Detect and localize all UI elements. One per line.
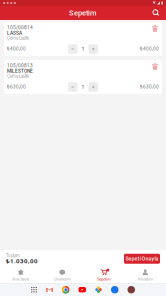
button[interactable]: Sepetim [83,265,124,284]
staticText: ₺400,00 [140,46,159,52]
staticText: Ürünlerim [54,277,70,281]
staticText: Toplam [6,253,20,258]
button[interactable]: Ürünü sil [150,62,159,71]
button[interactable]: Ana Sayfa [0,265,41,284]
staticText: Hesabım [138,277,153,281]
staticText: Ana Sayfa [12,277,29,281]
staticText: Çema Lastik [7,74,29,79]
button[interactable]: Ürünü sil [150,24,159,33]
staticText: ₺630,00 [7,84,26,90]
staticText: Sepeti Onayla [125,256,158,262]
button[interactable]: Artır [88,44,98,54]
staticText: MILESTONE [7,68,33,74]
staticText: ₺1.030,00 [6,257,38,265]
staticText: 105/00813 [7,63,33,68]
staticText: Sepetim [69,9,97,17]
button[interactable]: Ürünlerim [41,265,83,284]
button[interactable]: Artır [88,82,98,92]
staticText: Sepetim [97,277,110,281]
button[interactable]: Azalt [68,82,77,92]
staticText: Çema Lastik [7,36,29,41]
button[interactable]: Ara [150,7,162,19]
button[interactable]: Hesabım [124,265,166,284]
staticText: ₺400,00 [7,46,26,52]
staticText: 1 [81,84,84,90]
staticText: 105/00814 [7,25,33,30]
staticText: ₺630,00 [140,84,159,90]
staticText: 1 [81,46,84,52]
staticText: LASSA [7,30,22,36]
button[interactable]: Azalt [68,44,77,54]
button[interactable]: Sepeti Onayla [124,254,160,264]
